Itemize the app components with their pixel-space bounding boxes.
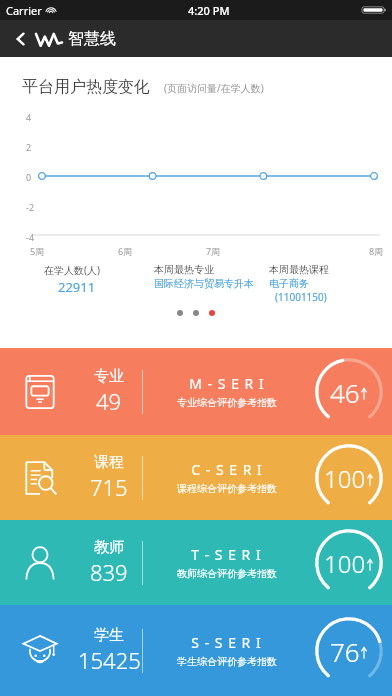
staticText: S - S E R I xyxy=(191,633,262,652)
staticText: 4 xyxy=(26,111,32,123)
staticText: 4:20 PM xyxy=(188,3,230,18)
staticText: 46 xyxy=(330,375,360,410)
staticText: 课程 xyxy=(94,453,124,472)
staticText: 8周 xyxy=(369,245,384,257)
staticText: -2 xyxy=(26,201,35,213)
staticText: (页面访问量/在学人数) xyxy=(164,81,264,95)
staticText: 国际经济与贸易专升本 xyxy=(154,277,254,290)
staticText: 课程综合评价参考指数 xyxy=(177,482,277,495)
staticText: 715 xyxy=(90,472,128,502)
staticText: 学生综合评价参考指数 xyxy=(177,655,277,668)
staticText: 100 xyxy=(324,547,366,580)
staticText: 76 xyxy=(330,634,360,669)
staticText: 专业 xyxy=(94,367,124,386)
staticText: 本周最热专业 xyxy=(154,263,214,276)
staticText: 0 xyxy=(26,171,32,183)
staticText: 5周 xyxy=(30,245,45,257)
staticText: 专业综合评价参考指数 xyxy=(177,396,277,409)
staticText: 15425 xyxy=(78,645,141,675)
staticText: 学生 xyxy=(94,626,124,645)
staticText: 电子商务 xyxy=(269,277,309,290)
staticText: 2 xyxy=(26,141,32,153)
staticText: 49 xyxy=(96,386,122,416)
staticText: T - S E R I xyxy=(191,545,262,564)
staticText: 智慧线 xyxy=(68,29,116,49)
button[interactable]: 教师 xyxy=(0,520,392,605)
staticText: 7周 xyxy=(206,245,221,257)
staticText: C - S E R I xyxy=(191,460,263,479)
staticText: 教师综合评价参考指数 xyxy=(177,567,277,580)
staticText: -4 xyxy=(26,231,35,243)
staticText: 教师 xyxy=(94,538,124,557)
staticText: 在学人数(人) xyxy=(44,263,100,277)
button[interactable]: 课程 xyxy=(0,435,392,520)
staticText: 平台用户热度变化 xyxy=(22,77,150,97)
staticText: (11001150) xyxy=(275,290,327,304)
staticText: 本周最热课程 xyxy=(269,263,329,276)
staticText: M - S E R I xyxy=(189,374,265,393)
staticText: Carrier xyxy=(6,3,42,18)
button[interactable]: 学生 xyxy=(0,605,392,696)
staticText: 100 xyxy=(324,462,366,495)
button[interactable]: 专业 xyxy=(0,348,392,435)
staticText: 22911 xyxy=(58,278,96,296)
button[interactable]: Back xyxy=(8,26,34,52)
staticText: 839 xyxy=(90,557,128,587)
staticText: 6周 xyxy=(118,245,133,257)
